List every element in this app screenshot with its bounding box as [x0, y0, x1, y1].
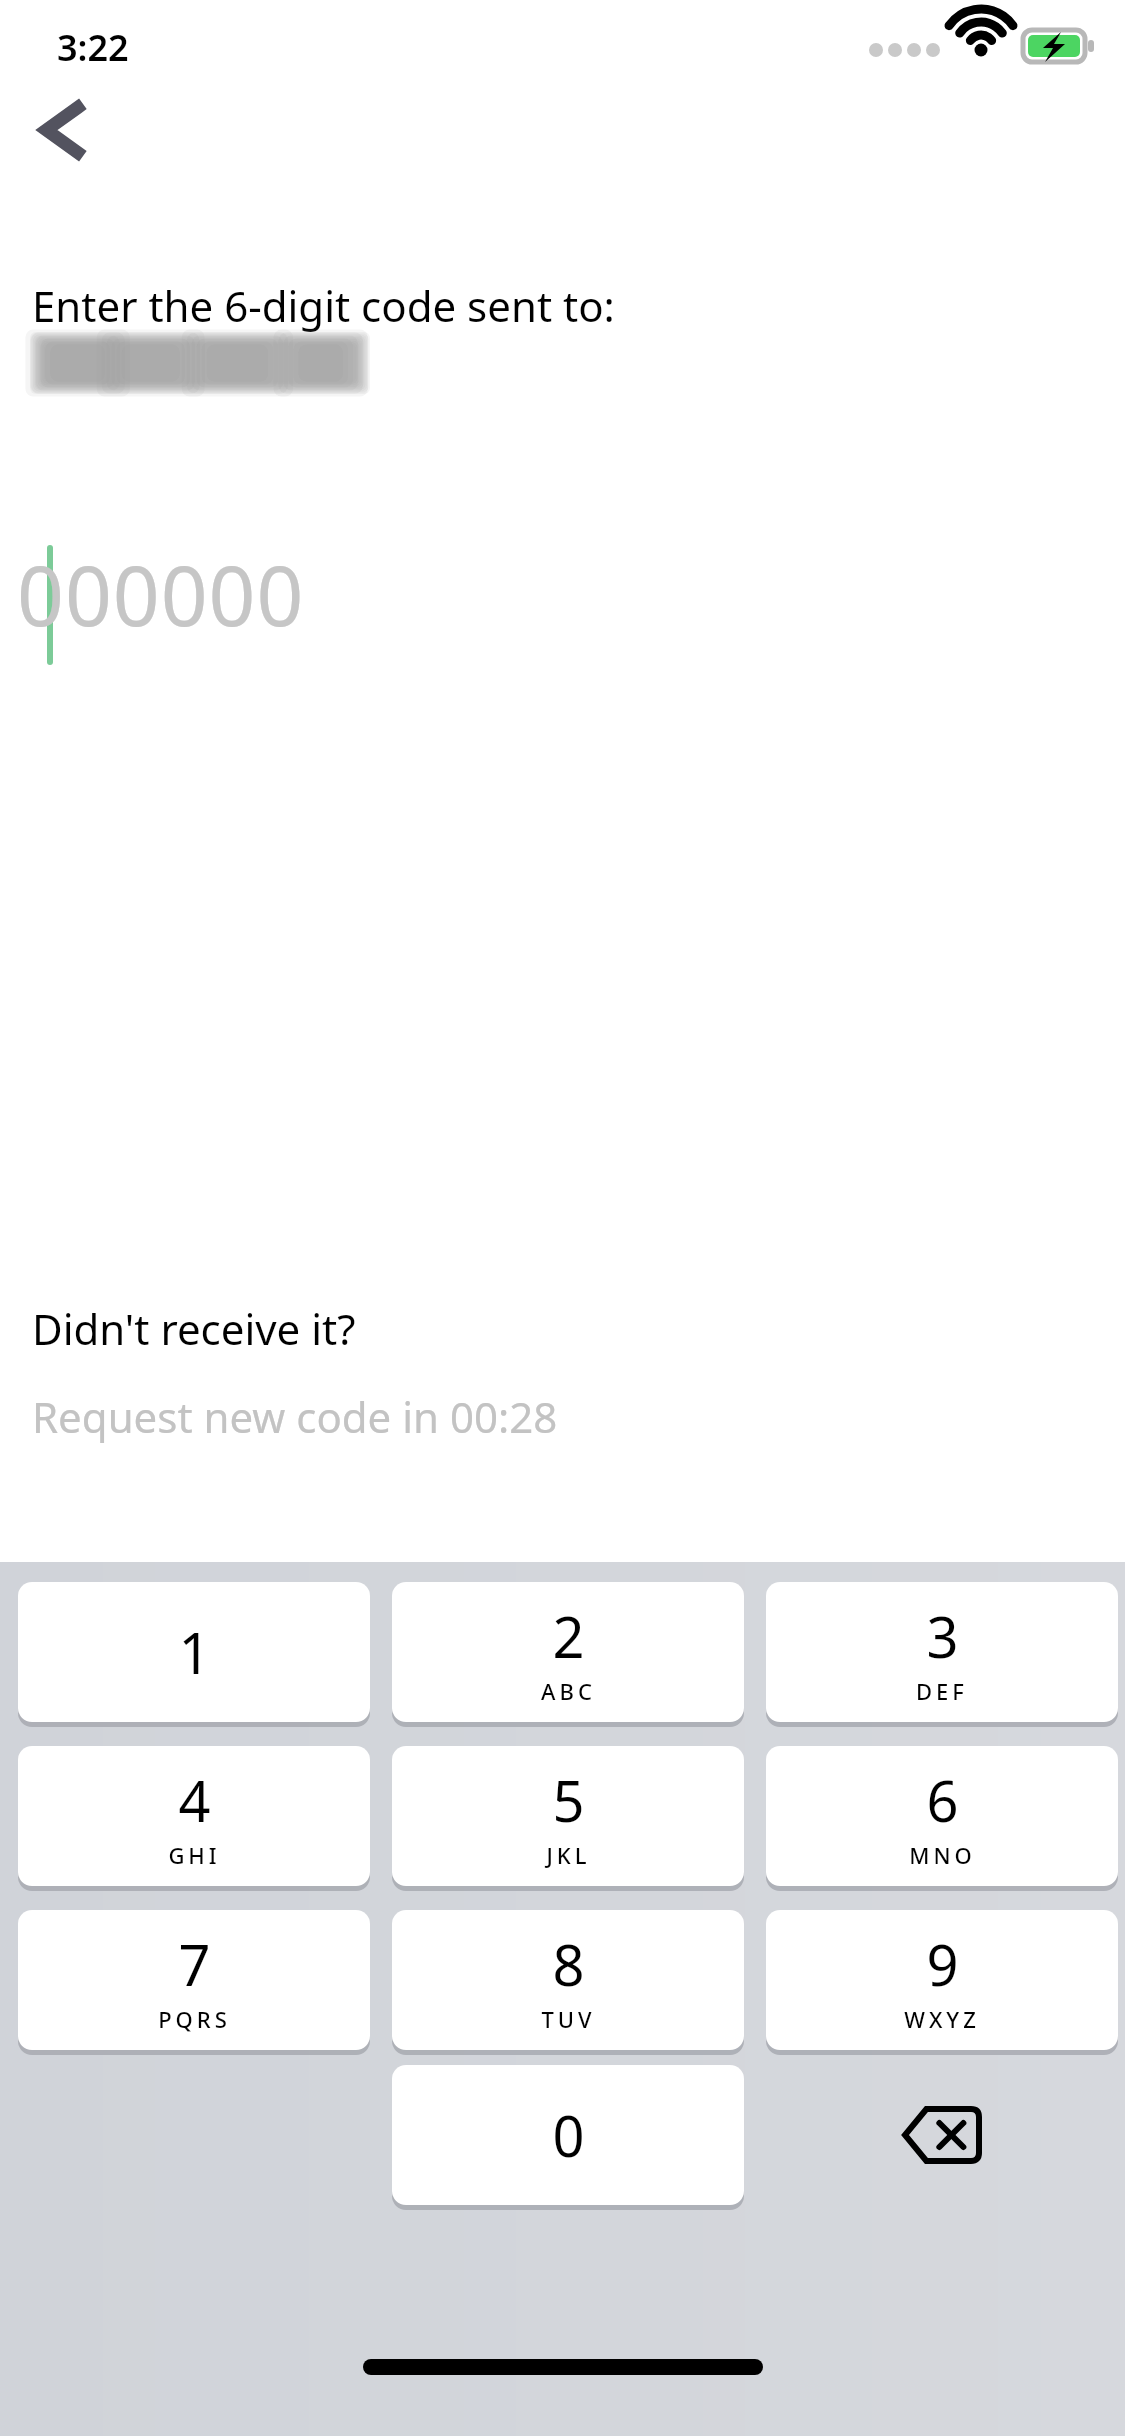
staticText: Enter the 6-digit code sent to:: [32, 277, 615, 334]
button[interactable]: Request new code in 00:28: [32, 1388, 558, 1445]
staticText: ABC: [541, 1676, 596, 1706]
button[interactable]: 3: [766, 1582, 1118, 1722]
staticText: 7: [178, 1926, 211, 2002]
staticText: 6: [926, 1762, 959, 1838]
staticText: 3: [926, 1598, 959, 1674]
staticText: Didn't receive it?: [32, 1300, 356, 1357]
button[interactable]: 9: [766, 1910, 1118, 2050]
staticText: WXYZ: [904, 2004, 980, 2034]
staticText: 4: [178, 1762, 211, 1838]
staticText: TUV: [541, 2004, 596, 2034]
staticText: GHI: [168, 1840, 221, 1870]
button[interactable]: 1: [18, 1582, 370, 1722]
staticText: Request new code in 00:28: [32, 1388, 558, 1445]
staticText: 1: [178, 1614, 211, 1690]
button[interactable]: 8: [392, 1910, 744, 2050]
staticText: 000000: [17, 538, 305, 650]
staticText: 2: [552, 1598, 585, 1674]
staticText: JKL: [546, 1840, 591, 1870]
button[interactable]: 000000: [0, 520, 1125, 680]
staticText: 8: [552, 1926, 585, 2002]
staticText: 0: [552, 2097, 585, 2173]
staticText: 5: [552, 1762, 585, 1838]
button[interactable]: Backspace: [766, 2065, 1118, 2205]
button[interactable]: 5: [392, 1746, 744, 1886]
staticText: 9: [926, 1926, 959, 2002]
staticText: 3:22: [57, 23, 129, 72]
button[interactable]: 7: [18, 1910, 370, 2050]
button[interactable]: 4: [18, 1746, 370, 1886]
button[interactable]: Back: [20, 95, 100, 165]
staticText: PQRS: [158, 2004, 231, 2034]
staticText: DEF: [916, 1676, 968, 1706]
button[interactable]: 2: [392, 1582, 744, 1722]
staticText: MNO: [909, 1840, 976, 1870]
button[interactable]: 6: [766, 1746, 1118, 1886]
button[interactable]: 0: [392, 2065, 744, 2205]
